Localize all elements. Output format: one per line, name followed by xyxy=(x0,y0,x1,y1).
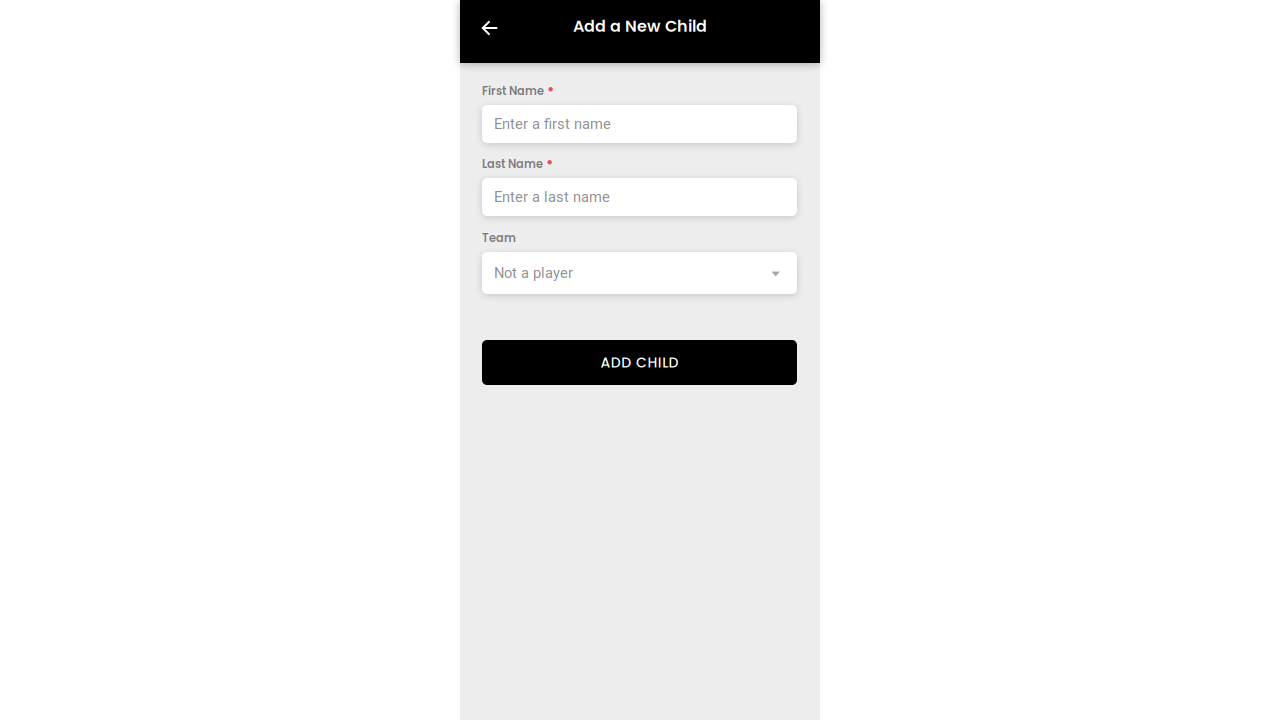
button[interactable]: ADD CHILD xyxy=(482,340,797,385)
staticText: Enter a last name xyxy=(494,188,610,206)
staticText: Not a player xyxy=(494,264,573,282)
staticText: Add a New Child xyxy=(573,15,707,37)
button[interactable]: Back xyxy=(472,11,508,45)
staticText: Enter a first name xyxy=(494,115,611,133)
staticText: First Name xyxy=(482,83,544,99)
staticText: Last Name xyxy=(482,156,543,172)
staticText: ADD CHILD xyxy=(600,353,679,372)
staticText: Team xyxy=(482,230,516,246)
button[interactable]: Enter a last name xyxy=(482,178,797,216)
button[interactable]: Not a player xyxy=(482,252,797,294)
button[interactable]: Enter a first name xyxy=(482,105,797,143)
